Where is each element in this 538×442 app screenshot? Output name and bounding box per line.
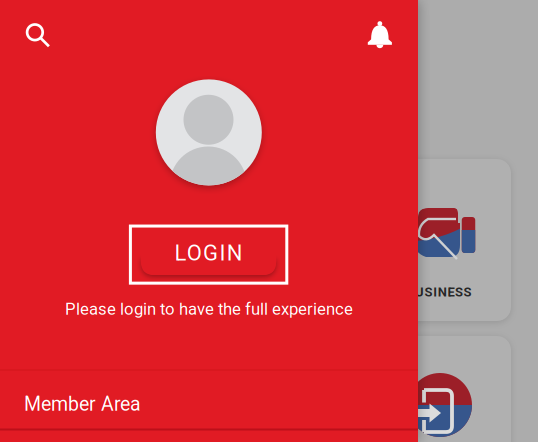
staticText: BUSINESS xyxy=(406,284,472,300)
button[interactable]: Notifications xyxy=(358,13,402,57)
button[interactable]: LOGIN xyxy=(130,226,287,283)
staticText: Please login to have the full experience xyxy=(65,299,353,319)
staticText: Member Area xyxy=(24,393,141,415)
button[interactable]: Search xyxy=(15,12,59,56)
staticText: LOGIN xyxy=(174,240,243,266)
button[interactable]: Member Area xyxy=(0,375,418,433)
